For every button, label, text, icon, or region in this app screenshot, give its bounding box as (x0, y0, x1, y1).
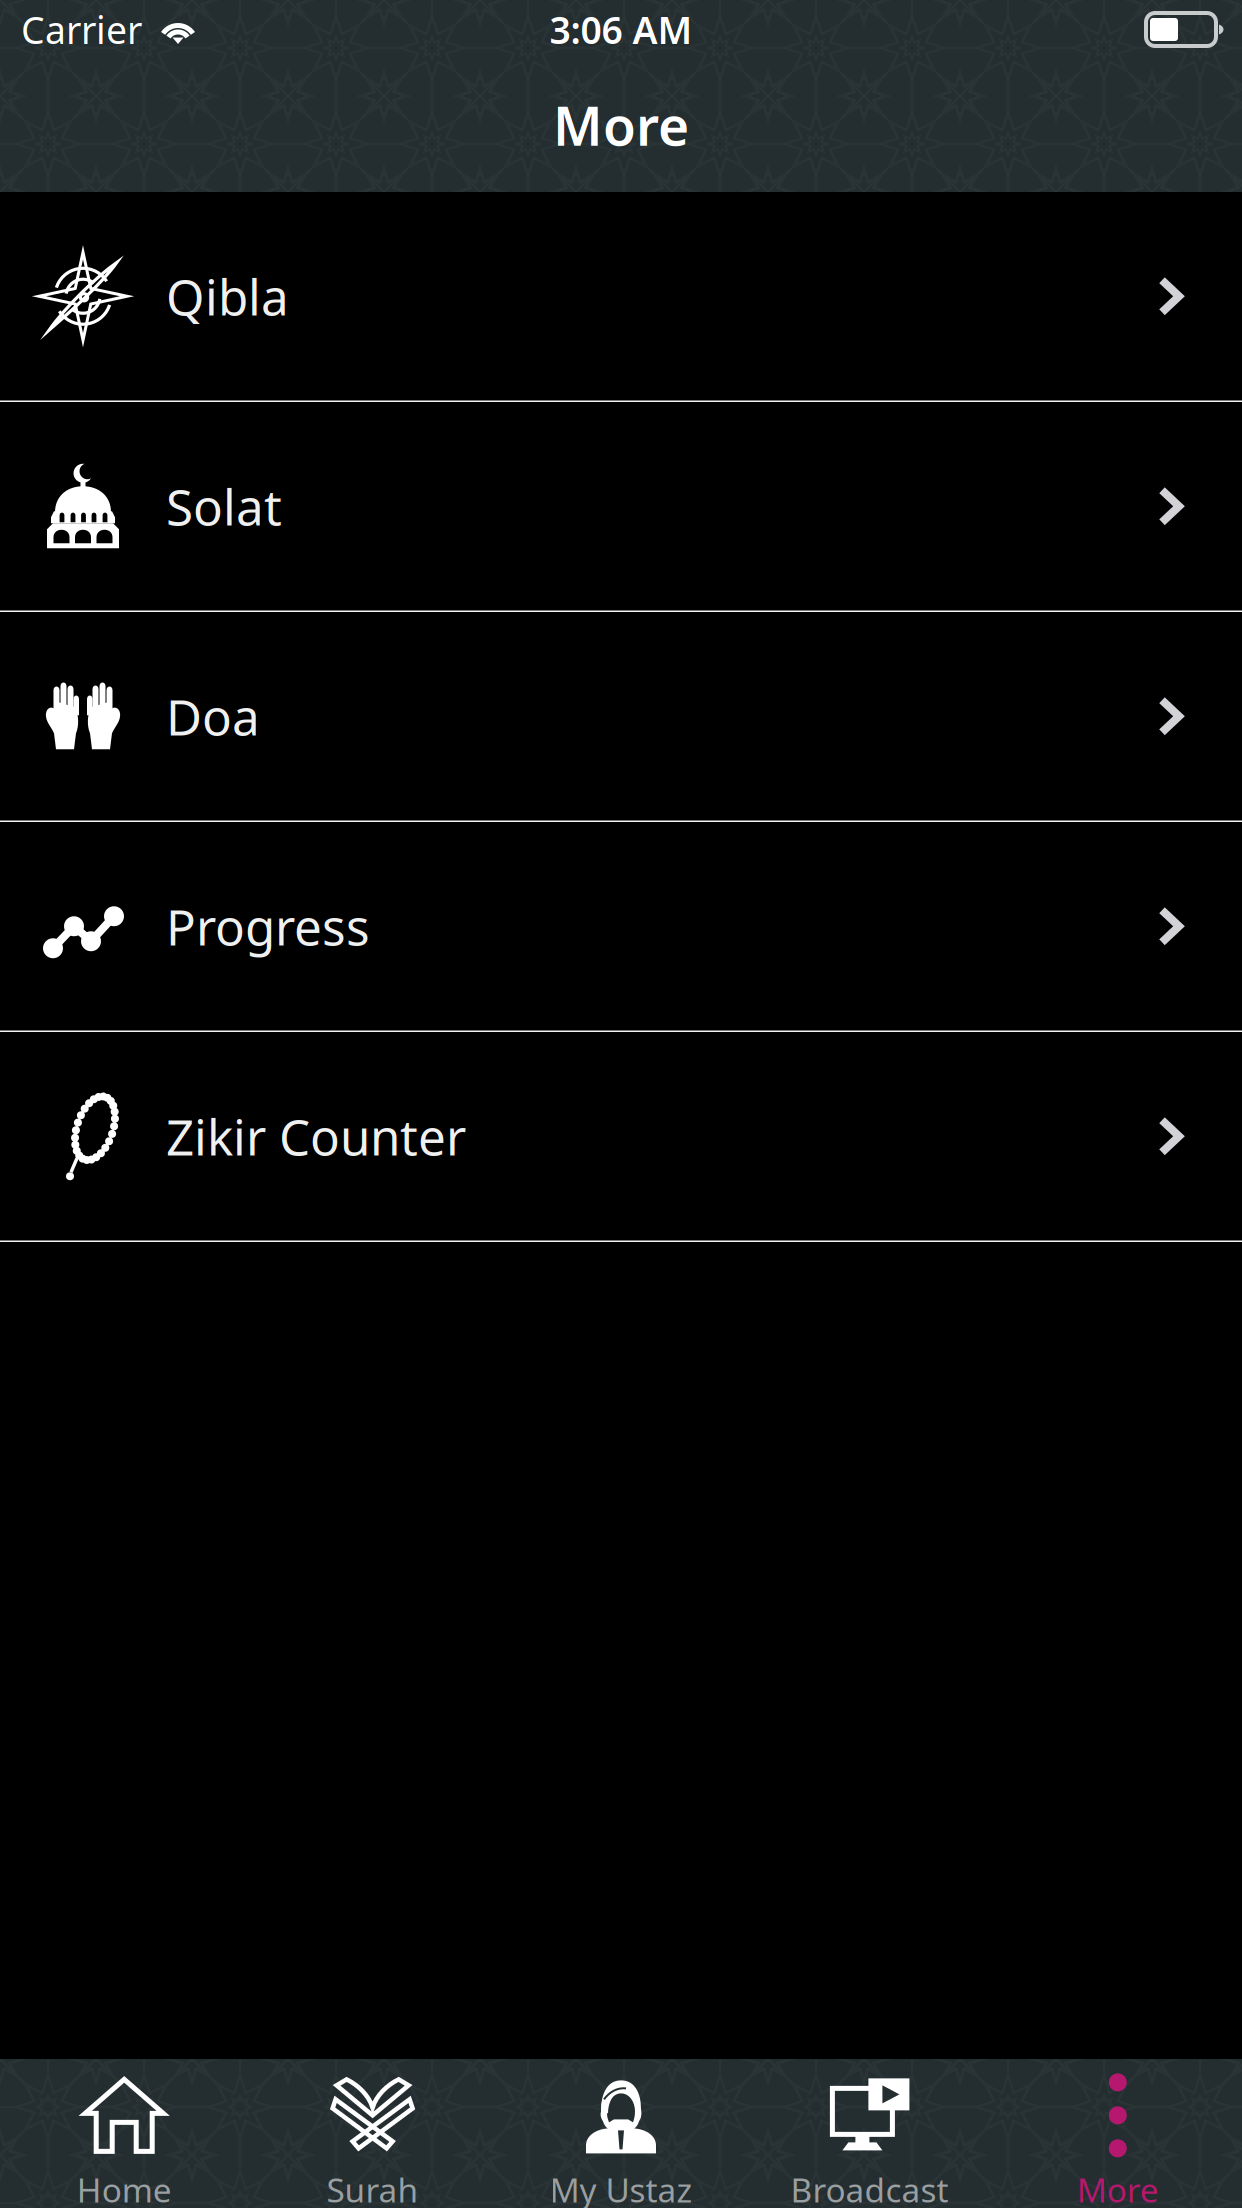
button[interactable]: Zikir Counter (0, 1032, 1242, 1242)
staticText: My Ustaz (549, 2167, 692, 2208)
staticText: Doa (166, 683, 260, 749)
staticText: Broadcast (790, 2167, 948, 2208)
staticText: Solat (166, 473, 282, 539)
staticText: Home (77, 2167, 172, 2208)
staticText: 3:06 AM (549, 5, 692, 54)
staticText: More (1077, 2167, 1159, 2208)
staticText: Zikir Counter (166, 1103, 466, 1169)
button[interactable]: My Ustaz (497, 2059, 745, 2208)
button[interactable]: Broadcast (745, 2059, 994, 2208)
staticText: Qibla (166, 263, 289, 329)
button[interactable]: Surah (248, 2059, 497, 2208)
button[interactable]: Home (0, 2059, 248, 2208)
staticText: Progress (166, 893, 370, 959)
staticText: Carrier (21, 5, 142, 54)
button[interactable]: More (994, 2059, 1242, 2208)
button[interactable]: Qibla (0, 192, 1242, 402)
button[interactable]: Solat (0, 402, 1242, 612)
button[interactable]: Progress (0, 822, 1242, 1032)
button[interactable]: Doa (0, 612, 1242, 822)
staticText: More (553, 90, 689, 160)
staticText: Surah (327, 2167, 419, 2208)
